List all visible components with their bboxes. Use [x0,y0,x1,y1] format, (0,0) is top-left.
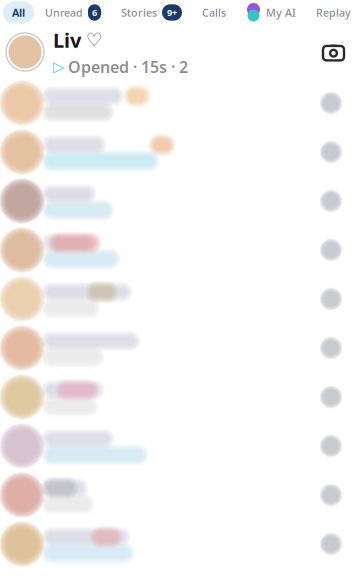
staticText: 6 [92,6,97,19]
staticText: Calls [202,5,226,20]
button[interactable] [0,177,359,226]
staticText: Opened · 15s · 2 [68,56,188,77]
button[interactable] [0,128,359,177]
staticText: Unread [45,5,83,20]
button[interactable] [0,471,359,520]
staticText: My AI [266,5,296,20]
staticText: Replay [316,5,351,20]
button[interactable] [0,324,359,373]
staticText: Liv [53,27,81,53]
button[interactable] [0,275,359,324]
button[interactable]: All [3,1,34,24]
staticText: ♡ [86,29,103,50]
staticText: All [12,5,25,20]
staticText: ▷ [53,58,64,75]
button[interactable] [0,226,359,275]
staticText: Stories [121,5,157,20]
button[interactable] [0,79,359,128]
button[interactable] [0,422,359,471]
button[interactable] [0,373,359,422]
button[interactable]: My AI [237,0,305,25]
button[interactable]: Calls [193,1,235,24]
button[interactable]: Stories [112,0,191,25]
button[interactable]: Liv [0,25,359,79]
button[interactable]: Replay [307,1,359,24]
staticText: 9+ [167,6,177,19]
button[interactable] [0,520,359,569]
button[interactable]: Unread [36,0,110,25]
